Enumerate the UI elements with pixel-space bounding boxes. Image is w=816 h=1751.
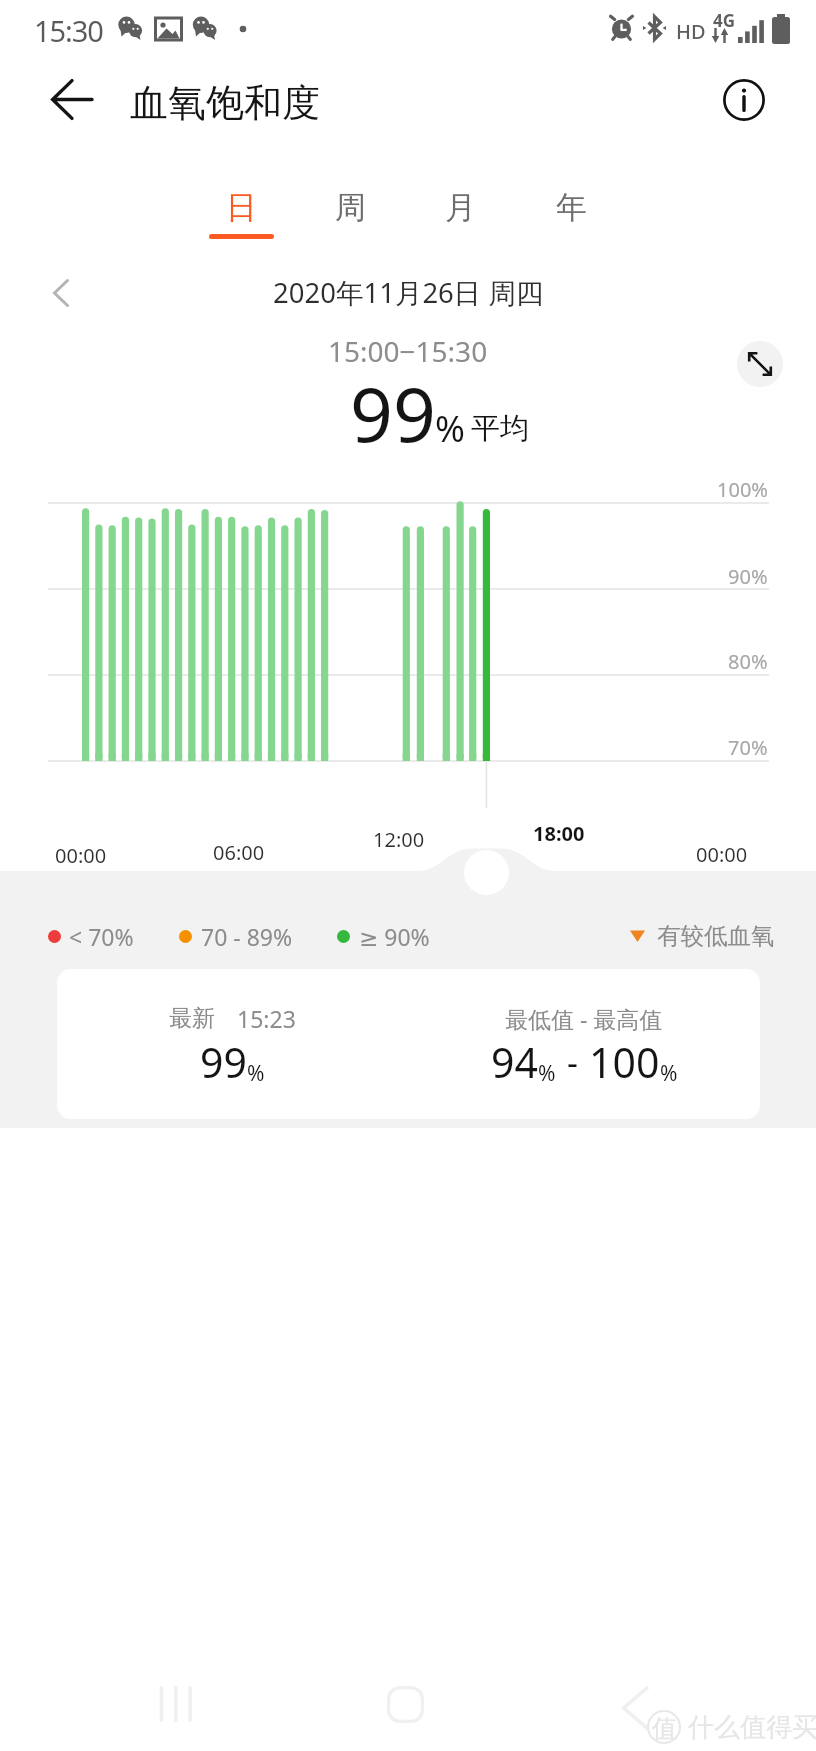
staticText: 周 — [335, 188, 366, 227]
staticText: 平均 — [471, 410, 529, 447]
button[interactable]: 70 - 89% — [179, 921, 293, 952]
staticText: 值 — [652, 1713, 677, 1744]
staticText: 70 - 89% — [201, 921, 293, 952]
button[interactable]: Previous day — [36, 268, 86, 318]
button[interactable]: ≥ 90% — [337, 921, 430, 952]
button[interactable]: 有较低血氧 — [630, 921, 775, 951]
staticText: 06:00 — [213, 839, 265, 866]
staticText: 最新 — [169, 1004, 215, 1033]
staticText: 2020年11月26日 周四 — [273, 274, 544, 312]
button[interactable]: Back — [606, 1678, 666, 1738]
staticText: 80% — [728, 648, 768, 675]
button[interactable]: 年 — [521, 188, 621, 240]
staticText: 94 — [491, 1034, 538, 1090]
staticText: 100% — [717, 476, 768, 503]
button[interactable]: 周 — [300, 188, 400, 240]
staticText: 100 — [589, 1034, 660, 1090]
staticText: 15:30 — [34, 11, 103, 50]
staticText: - — [567, 1039, 578, 1085]
staticText: 有较低血氧 — [657, 921, 775, 951]
staticText: 12:00 — [373, 826, 425, 853]
staticText: 月 — [445, 188, 476, 227]
staticText: 15:00−15:30 — [328, 332, 488, 370]
staticText: 00:00 — [696, 841, 748, 868]
button[interactable]: Information — [716, 72, 772, 128]
button[interactable]: Recent apps — [146, 1674, 206, 1734]
staticText: 血氧饱和度 — [130, 79, 320, 127]
staticText: < 70% — [69, 921, 134, 952]
staticText: % — [247, 1059, 265, 1088]
staticText: % — [538, 1059, 556, 1088]
staticText: % — [435, 404, 465, 453]
staticText: ≥ 90% — [359, 921, 430, 952]
staticText: 年 — [556, 188, 587, 227]
staticText: % — [660, 1059, 678, 1088]
staticText: 4G — [713, 9, 736, 32]
button[interactable]: Back — [43, 71, 100, 128]
staticText: 18:00 — [533, 820, 585, 847]
button[interactable]: 最新 — [57, 969, 760, 1119]
button[interactable]: 日 — [191, 188, 291, 240]
button[interactable]: Expand chart — [737, 341, 783, 387]
staticText: 最低值 - 最高值 — [505, 1003, 663, 1034]
staticText: 日 — [226, 188, 257, 227]
button[interactable]: 月 — [410, 188, 510, 240]
button[interactable]: Home — [375, 1674, 435, 1734]
staticText: 15:23 — [237, 1003, 296, 1034]
staticText: 70% — [728, 734, 768, 761]
staticText: HD — [676, 18, 706, 45]
staticText: 99 — [200, 1034, 247, 1090]
staticText: 什么值得买 — [688, 1711, 816, 1744]
staticText: 90% — [728, 563, 768, 590]
button[interactable]: Time scrubber — [464, 850, 509, 895]
button[interactable]: < 70% — [48, 921, 134, 952]
staticText: 00:00 — [55, 842, 107, 869]
staticText: 99 — [350, 362, 436, 464]
